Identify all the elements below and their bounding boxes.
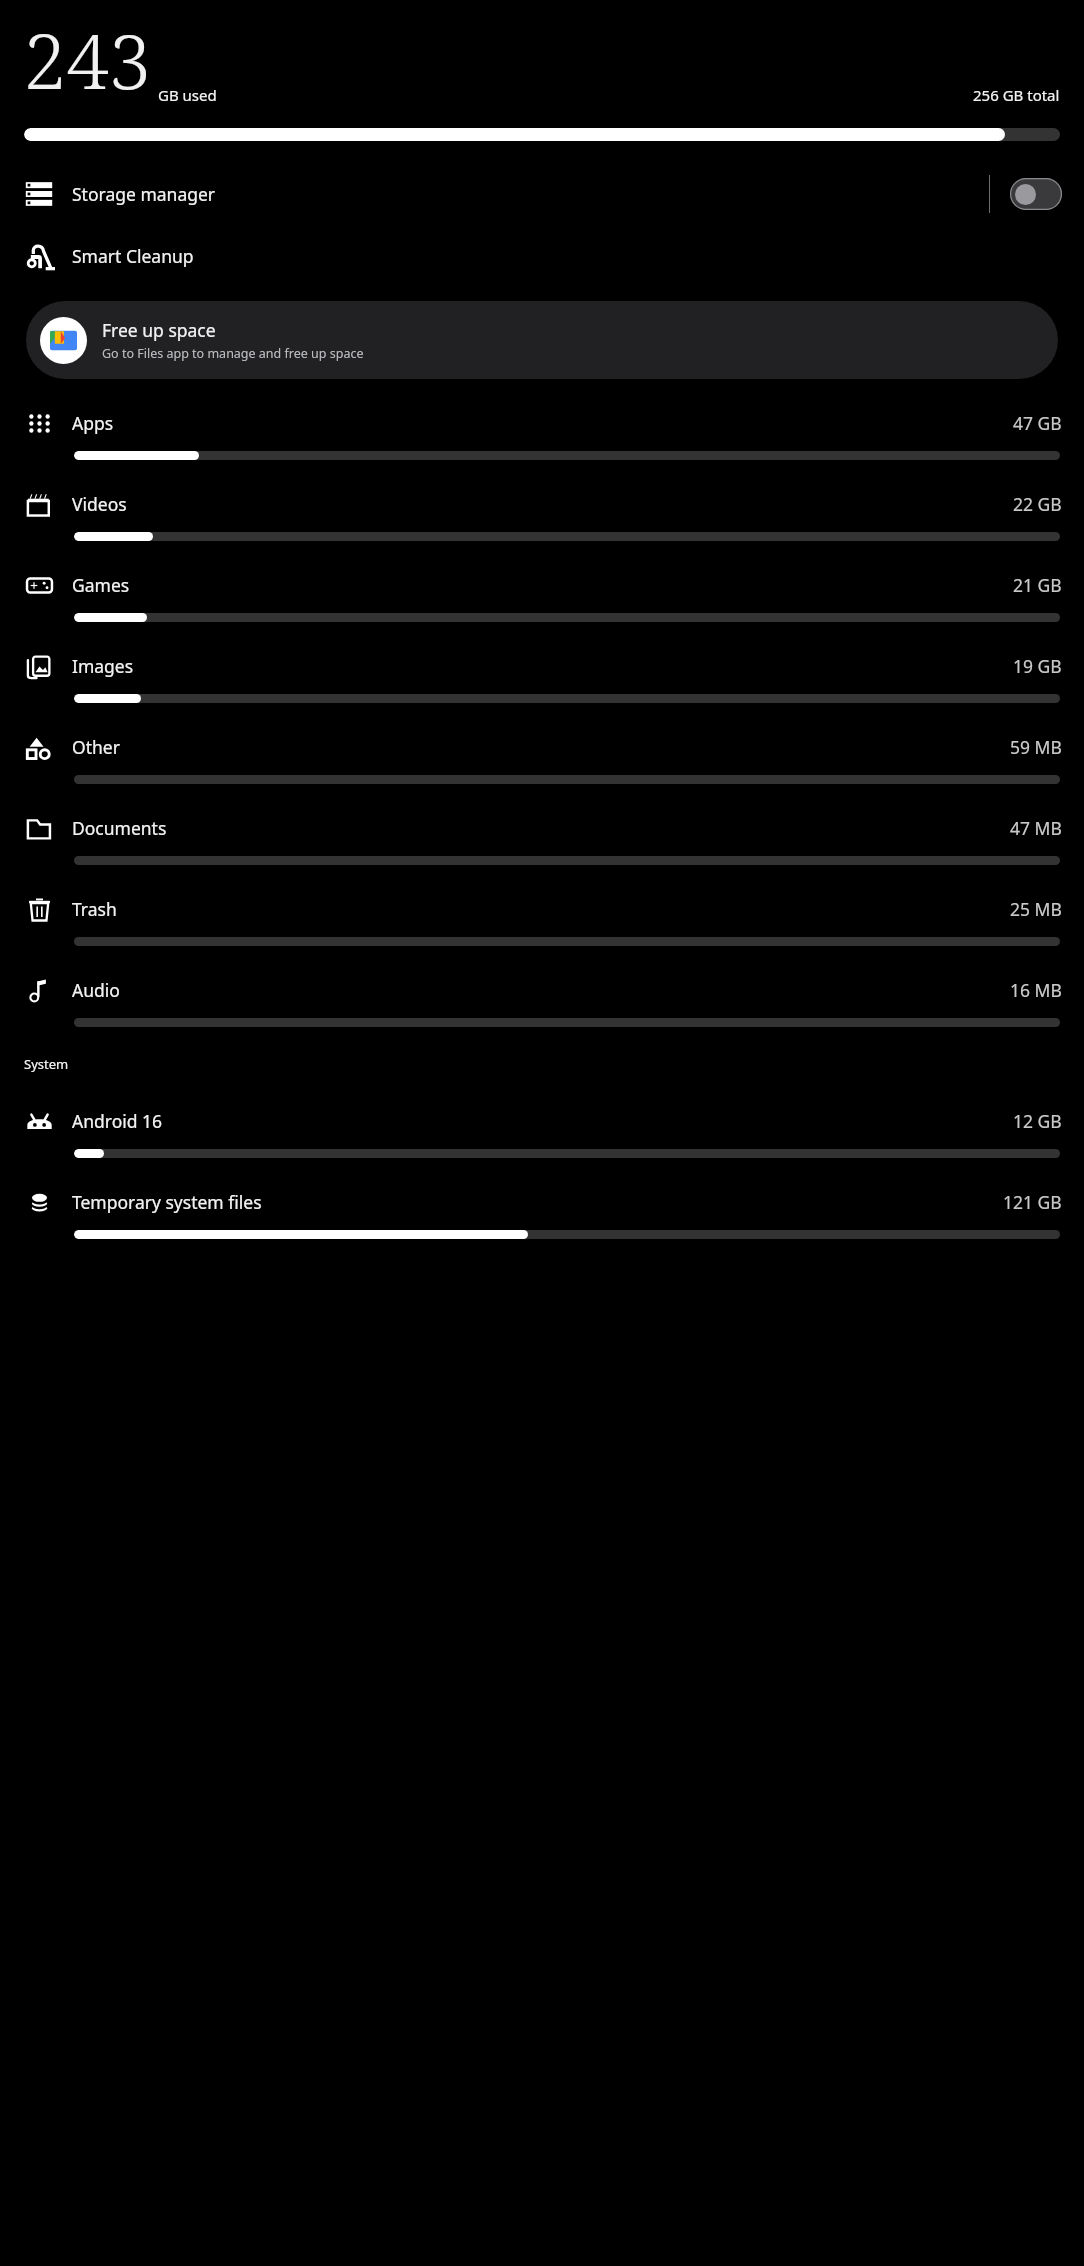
staticText: 47 MB [1010,816,1062,840]
staticText: 243 [24,8,152,112]
button[interactable]: Documents [0,800,1084,881]
button[interactable]: Storage manager [0,163,1084,225]
staticText: Go to Files app to manage and free up sp… [102,345,364,362]
staticText: Documents [72,816,167,840]
staticText: Games [72,573,130,597]
button[interactable]: Temporary system files [0,1174,1084,1255]
staticText: 47 GB [1013,411,1062,435]
staticText: 256 GB total [973,85,1060,105]
staticText: 12 GB [1013,1109,1062,1133]
staticText: Temporary system files [72,1190,262,1214]
staticText: GB used [158,85,217,105]
button[interactable]: Apps [0,395,1084,476]
staticText: Storage manager [72,182,216,206]
staticText: Trash [72,897,117,921]
staticText: 21 GB [1013,573,1062,597]
button[interactable]: Images [0,638,1084,719]
button[interactable]: Games [0,557,1084,638]
button[interactable]: Storage manager toggle [1010,178,1062,210]
staticText: 25 MB [1010,897,1062,921]
staticText: Android 16 [72,1109,163,1133]
staticText: 59 MB [1010,735,1062,759]
staticText: Videos [72,492,127,516]
staticText: 121 GB [1003,1190,1062,1214]
staticText: Images [72,654,134,678]
button[interactable]: Audio [0,962,1084,1043]
button[interactable]: Videos [0,476,1084,557]
staticText: Smart Cleanup [72,244,194,268]
staticText: Free up space [102,318,216,342]
button[interactable]: Android 16 [0,1093,1084,1174]
button[interactable]: Trash [0,881,1084,962]
staticText: 16 MB [1010,978,1062,1002]
staticText: 19 GB [1013,654,1062,678]
button[interactable]: Smart Cleanup [0,225,1084,287]
staticText: 22 GB [1013,492,1062,516]
staticText: Audio [72,978,120,1002]
staticText: System [24,1055,69,1073]
button[interactable]: Other [0,719,1084,800]
staticText: Other [72,735,120,759]
button[interactable]: Free up space [26,301,1058,379]
staticText: Apps [72,411,114,435]
